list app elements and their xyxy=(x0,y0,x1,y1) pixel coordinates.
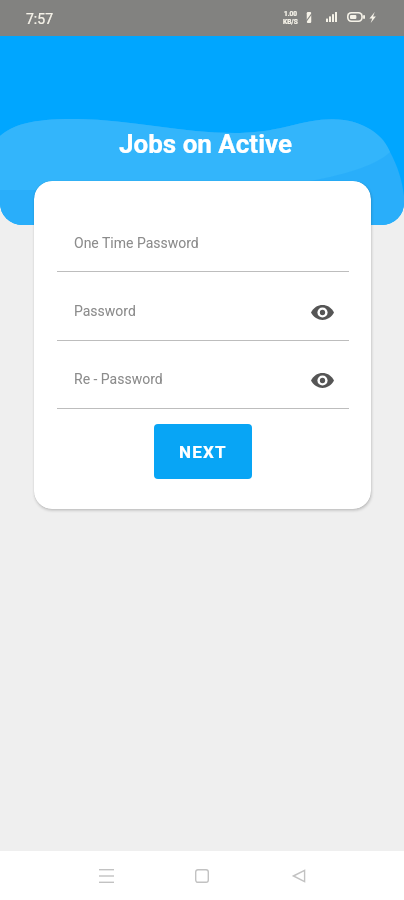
staticText: Password xyxy=(74,303,136,319)
button[interactable]: Back xyxy=(275,852,323,900)
button[interactable]: Home xyxy=(178,852,226,900)
staticText: 1.00 xyxy=(284,10,298,18)
staticText: One Time Password xyxy=(74,235,199,251)
staticText: Re - Password xyxy=(74,371,163,387)
button[interactable]: Toggle password visibility xyxy=(306,364,338,396)
button[interactable]: Recents xyxy=(82,852,130,900)
staticText: Jobs on Active xyxy=(119,129,293,159)
staticText: KB/S xyxy=(283,18,298,26)
button[interactable]: NEXT xyxy=(154,424,252,479)
staticText: 7:57 xyxy=(26,11,53,27)
button[interactable]: Toggle password visibility xyxy=(306,296,338,328)
staticText: NEXT xyxy=(179,442,227,462)
